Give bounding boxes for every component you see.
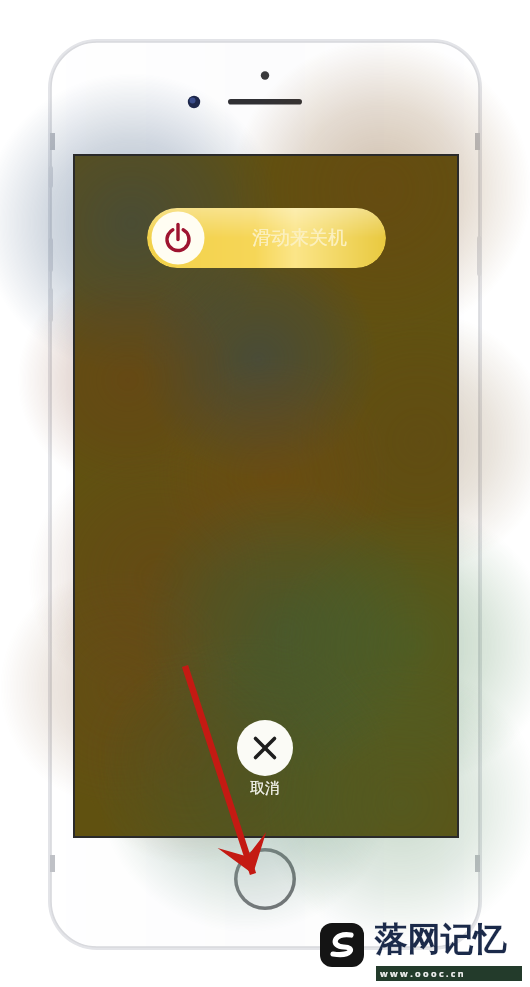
staticText: 取消 — [250, 779, 280, 798]
button[interactable]: 滑动来关机 — [147, 208, 386, 268]
staticText: 落网记忆 — [374, 919, 506, 961]
button[interactable]: 取消 — [237, 720, 293, 792]
staticText: 滑动来关机 — [252, 226, 347, 250]
staticText: w w w . o o o c . c n — [380, 967, 464, 979]
